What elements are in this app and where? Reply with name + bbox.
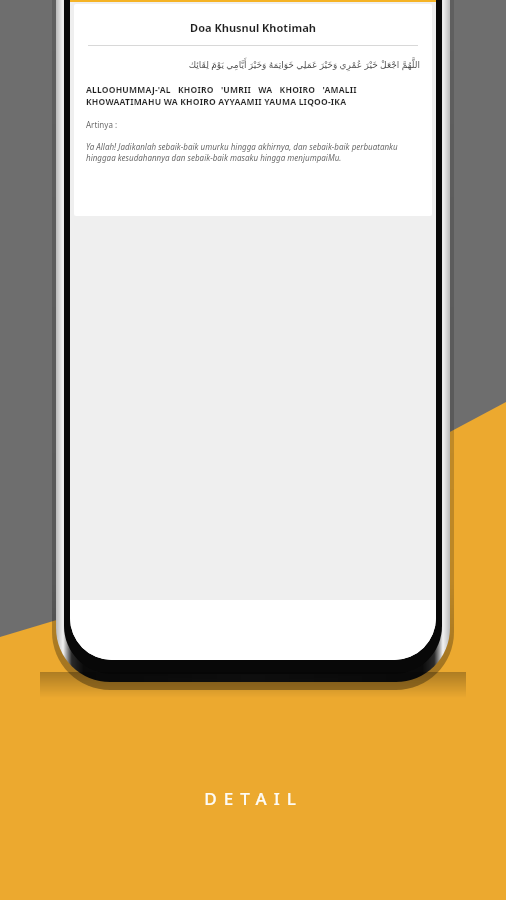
staticText: Doa Khusnul Khotimah	[86, 20, 420, 35]
staticText: اللَّهُمَّ اجْعَلْ خَيْرَ عُمْرِي وَخَيْ…	[94, 58, 420, 70]
staticText: ALLOOHUMMAJ-'AL KHOIRO 'UMRII WA KHOIRO …	[86, 84, 418, 108]
staticText: Ya Allah! Jadikanlah sebaik-baik umurku …	[86, 141, 418, 163]
button[interactable]: Doa Khusnul Khotimah	[74, 4, 432, 216]
staticText: DETAIL	[204, 787, 303, 810]
button[interactable]: Detail	[0, 782, 506, 814]
staticText: Artinya :	[86, 119, 118, 130]
